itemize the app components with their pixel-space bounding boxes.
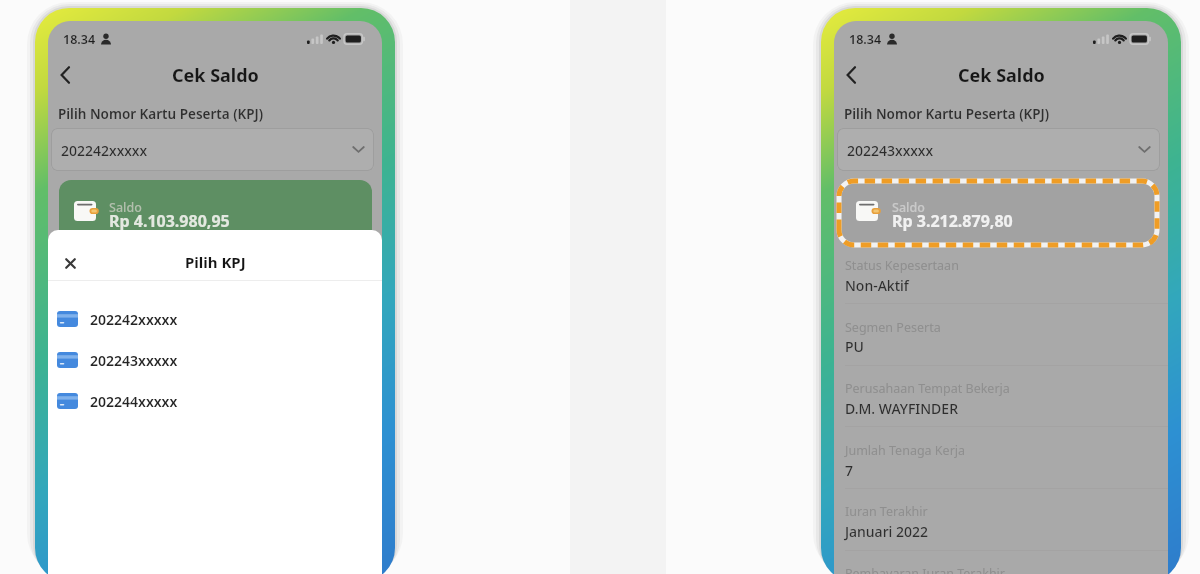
staticText: 202243xxxxx (847, 141, 934, 160)
staticText: 7 (845, 461, 854, 480)
button[interactable]: 202244xxxxx (48, 382, 382, 420)
button[interactable]: 202242xxxxx (48, 300, 382, 338)
staticText: Iuran Terakhir (845, 503, 928, 520)
button[interactable]: 202243xxxxx (837, 128, 1160, 171)
staticText: Rp 3.212.879,80 (892, 210, 1013, 232)
staticText: Cek Saldo (172, 63, 259, 87)
staticText: 202242xxxxx (61, 141, 148, 160)
button[interactable]: 202242xxxxx (51, 128, 374, 171)
staticText: Rp 4.103.980,95 (109, 210, 230, 232)
staticText: Saldo (109, 199, 142, 216)
staticText: D.M. WAYFINDER (845, 399, 958, 418)
staticText: PU (845, 337, 864, 356)
staticText: 18.34 (63, 31, 96, 48)
staticText: 18.34 (849, 31, 882, 48)
staticText: Segmen Peserta (845, 319, 941, 336)
button[interactable]: 202243xxxxx (48, 341, 382, 379)
staticText: 202242xxxxx (90, 310, 178, 329)
staticText: Pilih Nomor Kartu Peserta (KPJ) (844, 105, 1050, 123)
staticText: Non-Aktif (845, 276, 909, 295)
button[interactable]: Saldo (842, 184, 1154, 242)
staticText: Pembayaran Iuran Terakhir (845, 565, 1005, 574)
staticText: Januari 2022 (845, 522, 929, 541)
staticText: Saldo (892, 199, 925, 216)
button[interactable]: Saldo (59, 180, 372, 242)
staticText: Cek Saldo (958, 63, 1045, 87)
staticText: Pilih Nomor Kartu Peserta (KPJ) (58, 105, 264, 123)
staticText: Status Kepesertaan (845, 257, 959, 274)
staticText: Jumlah Tenaga Kerja (845, 442, 966, 459)
staticText: 202243xxxxx (90, 351, 178, 370)
button[interactable] (838, 61, 866, 89)
button[interactable] (52, 61, 80, 89)
staticText: Perusahaan Tempat Bekerja (845, 380, 1010, 397)
staticText: 202244xxxxx (90, 392, 178, 411)
staticText: Pilih KPJ (185, 252, 246, 272)
button[interactable] (58, 251, 82, 275)
